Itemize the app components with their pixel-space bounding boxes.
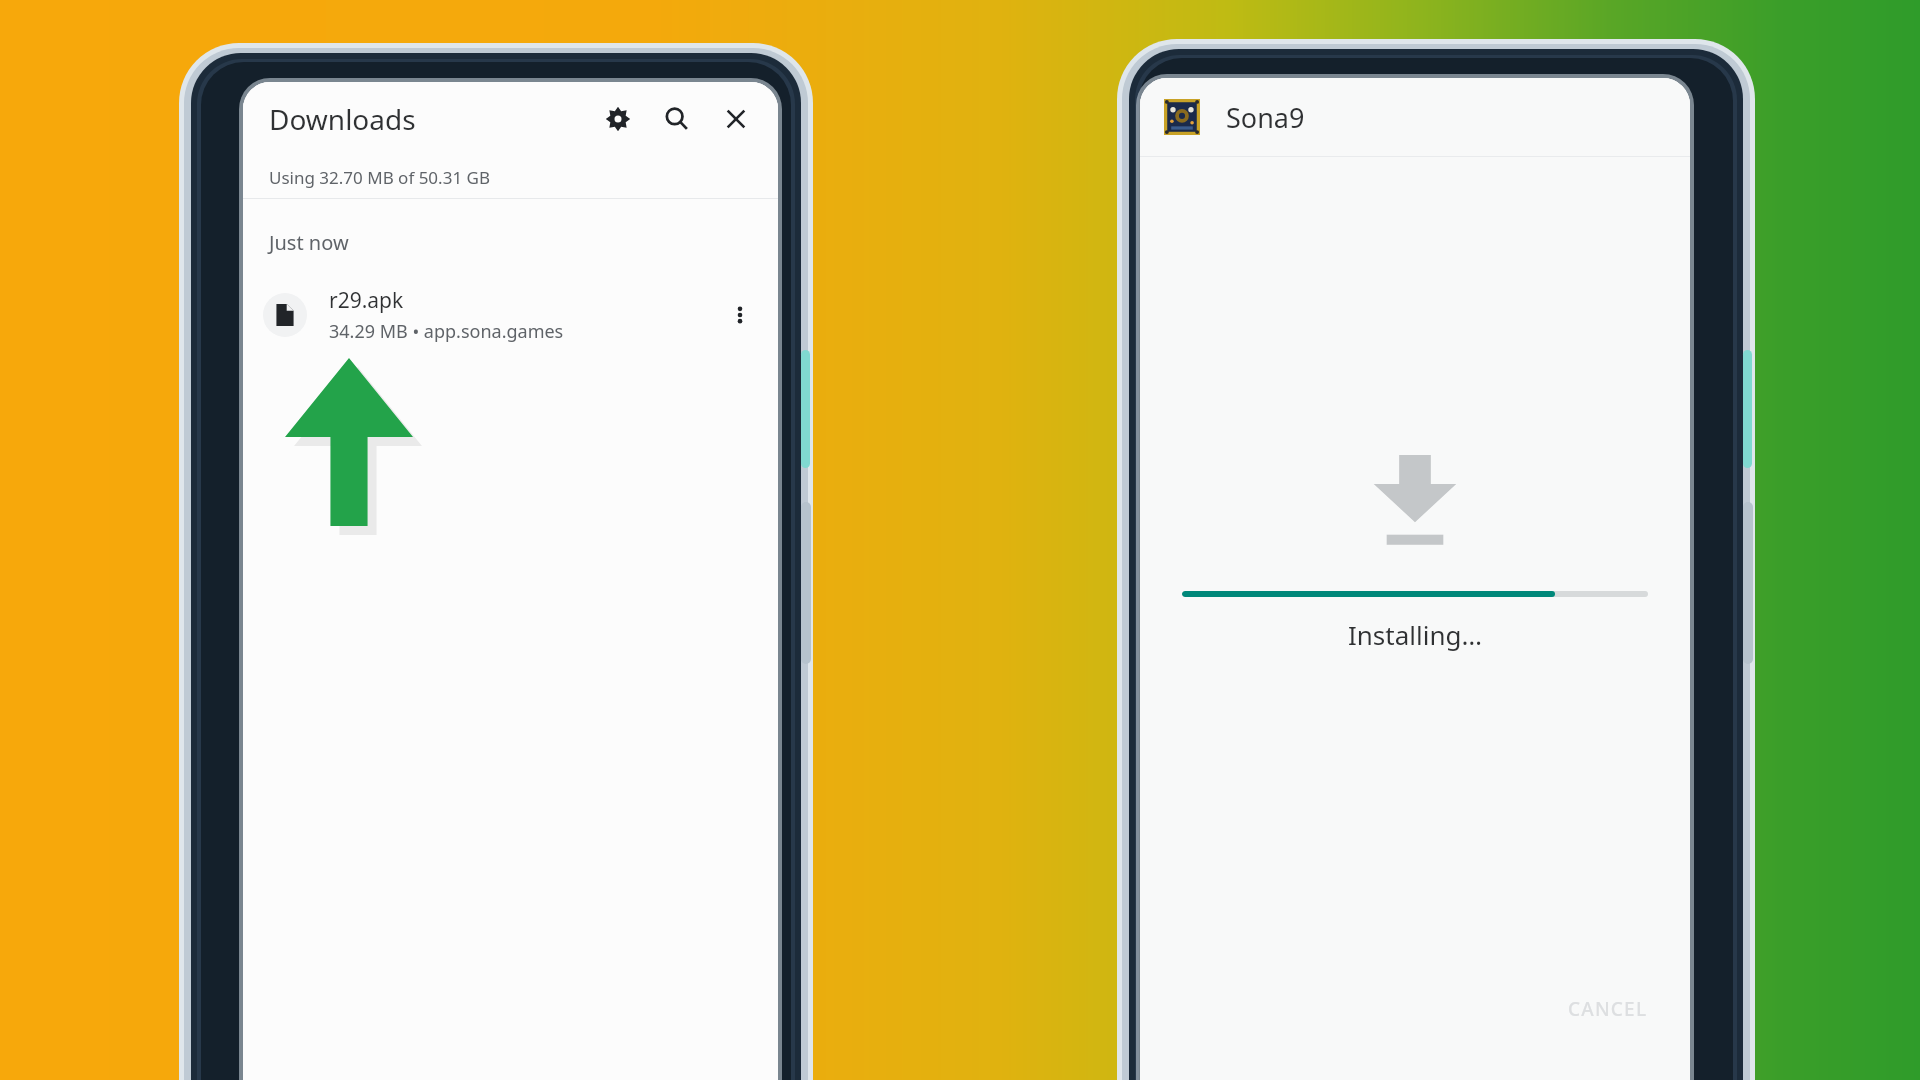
staticText: 34.29 MB • app.sona.games bbox=[329, 319, 564, 344]
button[interactable]: Settings bbox=[596, 97, 640, 141]
staticText: r29.apk bbox=[329, 286, 404, 315]
button[interactable]: r29.apk bbox=[243, 278, 778, 352]
staticText: Just now bbox=[269, 229, 349, 256]
button[interactable]: Sona9 app icon bbox=[1164, 99, 1200, 135]
staticText: CANCEL bbox=[1568, 996, 1648, 1022]
staticText: Installing… bbox=[1140, 617, 1690, 652]
button[interactable]: Close bbox=[714, 97, 758, 141]
staticText: Sona9 bbox=[1226, 99, 1305, 136]
button[interactable]: More options bbox=[718, 293, 762, 337]
staticText: Using 32.70 MB of 50.31 GB bbox=[269, 166, 490, 189]
button[interactable]: Search bbox=[655, 97, 699, 141]
button[interactable]: CANCEL bbox=[1554, 986, 1662, 1032]
staticText: Downloads bbox=[269, 100, 416, 138]
